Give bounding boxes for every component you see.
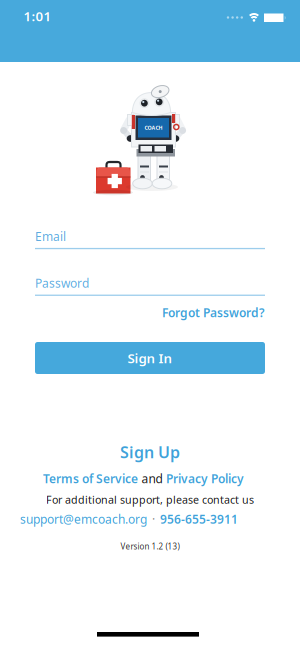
button[interactable]: Sign Up <box>120 441 180 463</box>
button[interactable]: Privacy Policy <box>166 470 244 486</box>
staticText: Terms of Service <box>43 470 138 486</box>
staticText: Version 1.2 (13) <box>120 541 179 552</box>
staticText: Forgot Password? <box>162 304 265 320</box>
staticText: Sign In <box>127 349 172 367</box>
staticText: Email <box>35 228 66 244</box>
button[interactable]: Sign In <box>35 342 265 374</box>
staticText: 956-655-3911 <box>160 511 238 527</box>
button[interactable]: Password <box>0 273 300 307</box>
staticText: 1:01 <box>23 7 51 25</box>
button[interactable]: Email <box>0 226 300 260</box>
staticText: Sign Up <box>120 441 180 463</box>
staticText: COACH <box>144 124 162 131</box>
staticText: Password <box>35 275 89 291</box>
staticText: Privacy Policy <box>166 470 244 486</box>
button[interactable]: Forgot Password? <box>35 303 265 321</box>
button[interactable]: support@emcoach.org <box>20 511 147 527</box>
staticText: and <box>141 470 162 486</box>
button[interactable]: Terms of Service <box>43 470 138 486</box>
staticText: support@emcoach.org <box>20 511 147 527</box>
button[interactable]: 956-655-3911 <box>160 511 238 527</box>
staticText: For additional support, please contact u… <box>46 492 254 507</box>
staticText: · <box>152 511 155 527</box>
